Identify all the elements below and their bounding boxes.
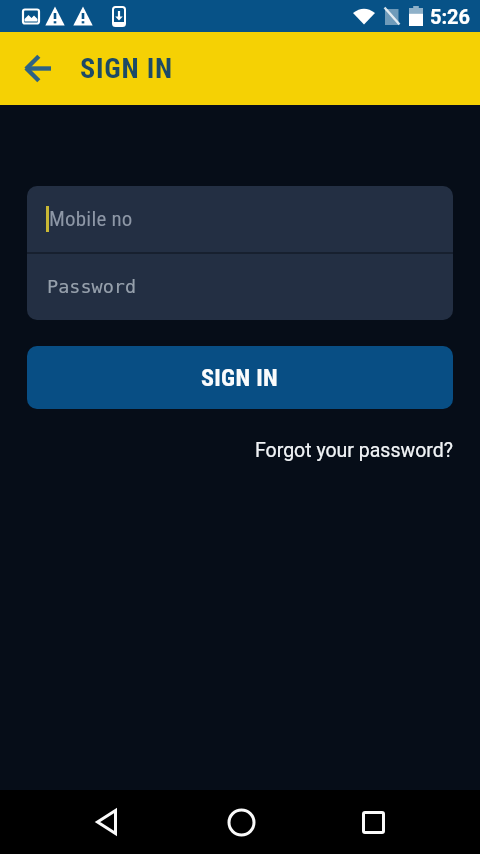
button[interactable]: [201, 790, 281, 854]
button[interactable]: Password: [27, 254, 453, 320]
button[interactable]: SIGN IN: [27, 346, 453, 409]
button[interactable]: [66, 790, 146, 854]
button[interactable]: [333, 790, 413, 854]
button[interactable]: Mobile no: [27, 186, 453, 252]
button[interactable]: Forgot your password?: [255, 439, 453, 462]
staticText: Password: [47, 276, 137, 298]
staticText: 5:26: [430, 5, 471, 28]
staticText: SIGN IN: [201, 364, 279, 392]
staticText: Mobile no: [49, 207, 133, 232]
staticText: Forgot your password?: [255, 439, 453, 462]
staticText: SIGN IN: [80, 52, 174, 85]
button[interactable]: [0, 32, 75, 105]
